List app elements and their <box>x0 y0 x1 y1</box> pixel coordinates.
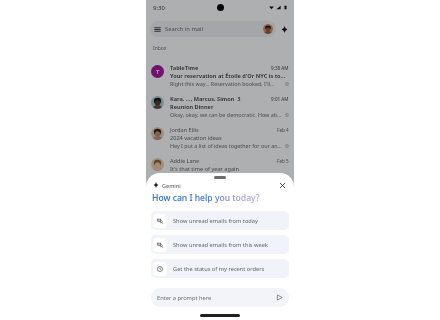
staticText: Jordan Ellis <box>170 126 276 134</box>
button[interactable]: Account <box>263 24 273 34</box>
staticText: TableTime <box>170 64 270 72</box>
button[interactable]: Jordan Ellis <box>146 122 294 153</box>
button[interactable]: Search in mail <box>150 21 276 37</box>
button[interactable]: Kara, …, Marcus, Simon 3 <box>146 91 294 122</box>
staticText: 9:01 AM <box>271 96 289 102</box>
staticText: Hey I put a list of ideas together for o… <box>170 142 283 149</box>
button[interactable]: Enter a prompt here <box>151 288 289 307</box>
staticText: Reunion Dinner <box>170 103 214 111</box>
staticText: 9:30 <box>153 4 165 12</box>
button[interactable]: Get the status of my recent orders <box>151 259 289 278</box>
staticText: Addie Lane <box>170 157 276 165</box>
staticText: Show unread emails from today <box>173 217 258 225</box>
button[interactable]: Show unread emails from today <box>151 211 289 230</box>
staticText: Enter a prompt here <box>157 294 212 302</box>
staticText: Feb 5 <box>277 158 289 164</box>
staticText: Search in mail <box>165 25 204 33</box>
staticText: Show unread emails from this week <box>173 241 268 249</box>
button[interactable]: Close <box>277 180 287 190</box>
staticText: Your reservation at Étoile d'Or NYC is t… <box>170 72 286 80</box>
staticText: It's that time of year again <box>170 165 239 173</box>
staticText: Inbox <box>153 45 167 52</box>
staticText: 2024 vacation ideas <box>170 134 222 142</box>
staticText: How can I help you today? <box>152 192 260 204</box>
staticText: Right this way… Reservation booked, I'll… <box>170 80 283 87</box>
staticText: Okay, okay, we can be democratic. How ab… <box>170 111 283 118</box>
staticText: T <box>156 68 160 76</box>
button[interactable]: T <box>146 60 294 91</box>
staticText: Get the status of my recent orders <box>173 265 265 273</box>
button[interactable]: Addie Lane <box>146 153 294 177</box>
staticText: 9:38 AM <box>271 65 289 71</box>
staticText: Gemini <box>162 182 181 189</box>
button[interactable]: Show unread emails from this week <box>151 235 289 254</box>
staticText: Kara, …, Marcus, Simon 3 <box>170 95 270 103</box>
staticText: Feb 4 <box>277 127 289 133</box>
button[interactable]: Gemini <box>276 21 292 37</box>
